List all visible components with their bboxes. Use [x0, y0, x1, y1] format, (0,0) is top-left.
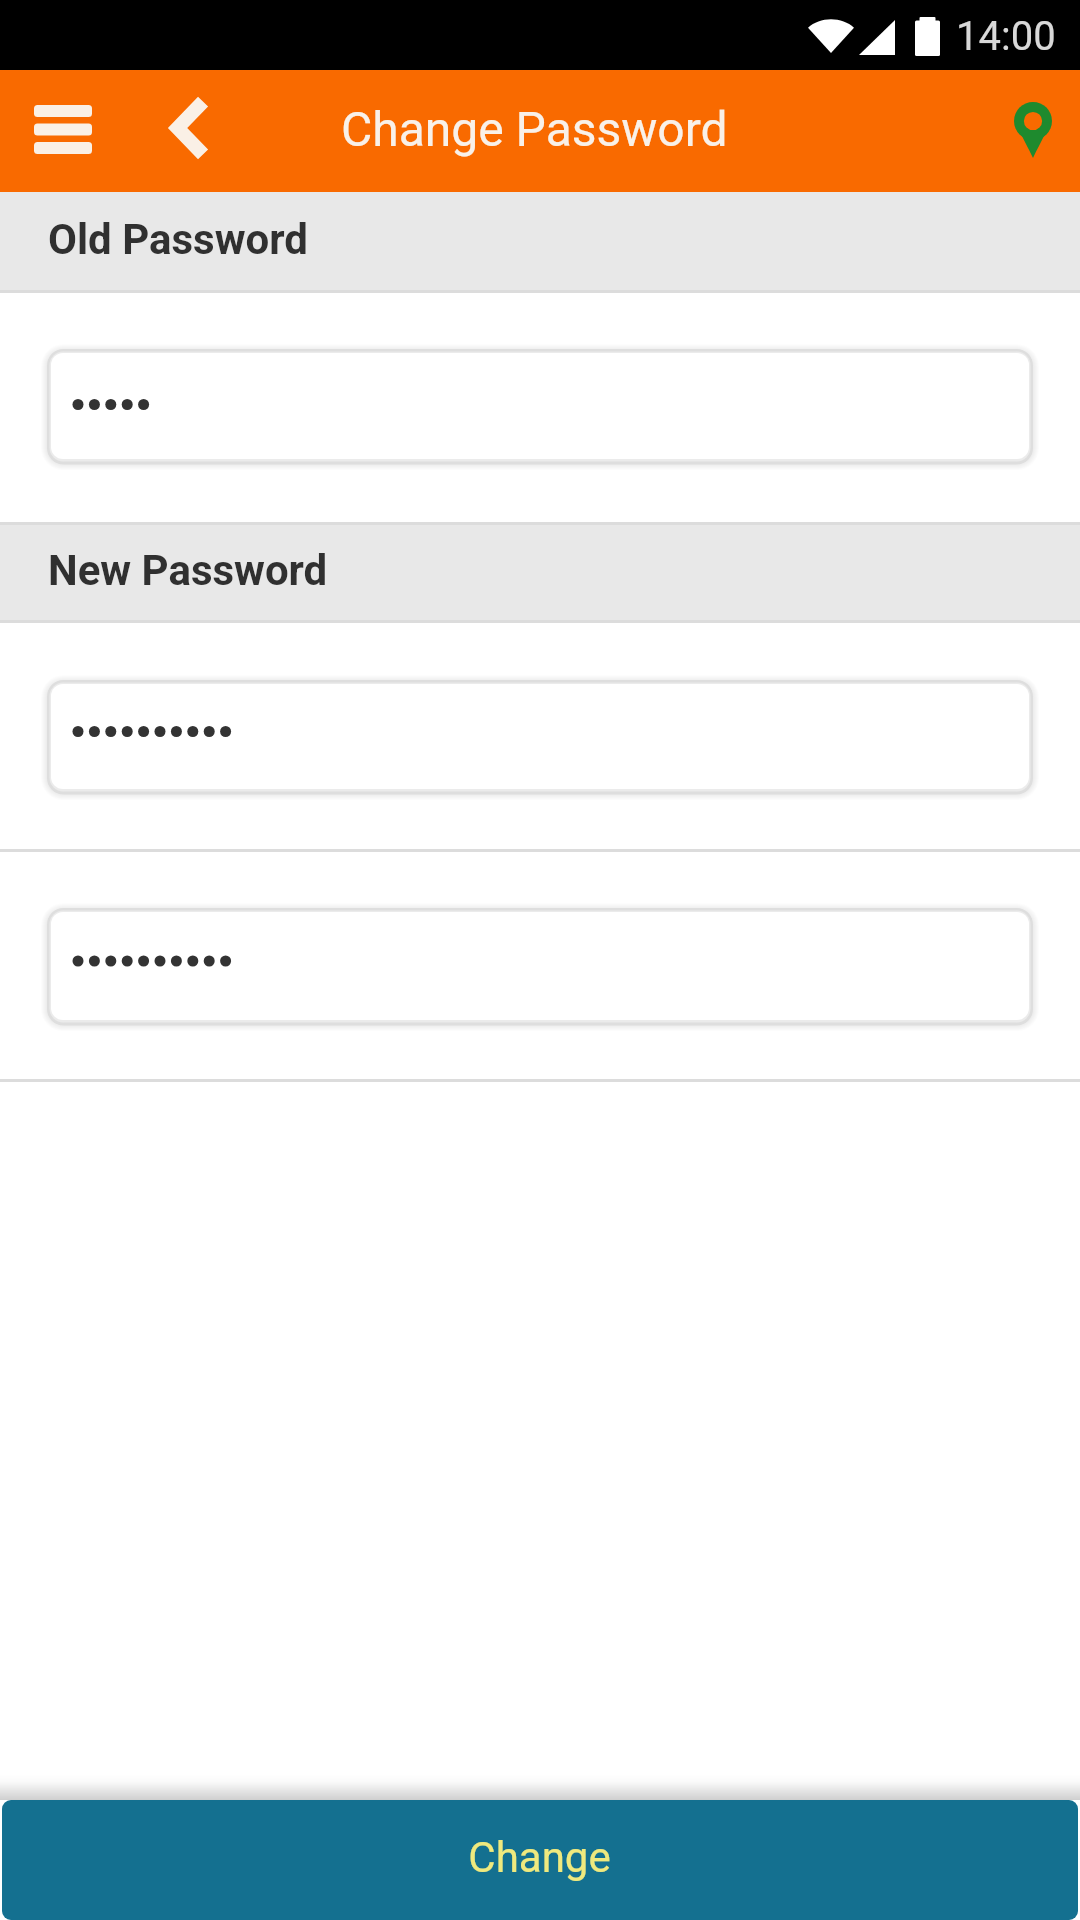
- staticText: Change: [468, 1833, 611, 1882]
- button[interactable]: Location: [984, 70, 1080, 192]
- staticText: Change Password: [341, 101, 728, 157]
- staticText: New Password: [48, 546, 328, 595]
- button[interactable]: Back: [125, 70, 250, 192]
- button[interactable]: [48, 350, 1032, 462]
- button[interactable]: Change: [2, 1800, 1078, 1920]
- button[interactable]: Open navigation menu: [0, 70, 124, 192]
- button[interactable]: [48, 681, 1032, 792]
- staticText: Old Password: [48, 215, 308, 264]
- button[interactable]: [48, 909, 1032, 1023]
- staticText: 14:00: [956, 13, 1056, 60]
